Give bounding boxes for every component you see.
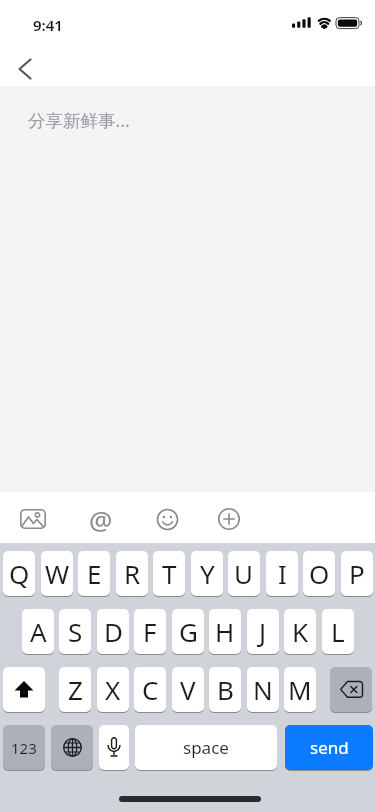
button[interactable]: O (303, 551, 335, 596)
button[interactable]: V (172, 667, 204, 712)
button[interactable] (150, 501, 184, 537)
button[interactable]: M (284, 667, 316, 712)
button[interactable]: W (41, 551, 73, 596)
button[interactable] (212, 501, 246, 537)
staticText: U (234, 556, 254, 591)
button[interactable]: P (341, 551, 373, 596)
staticText: B (217, 672, 234, 707)
staticText: J (259, 614, 267, 649)
staticText: A (30, 614, 47, 649)
staticText: D (104, 614, 123, 649)
staticText: N (253, 672, 273, 707)
button[interactable] (3, 667, 45, 712)
button[interactable]: @ (84, 501, 118, 537)
button[interactable] (14, 501, 52, 537)
button[interactable]: Z (59, 667, 91, 712)
staticText: K (292, 614, 309, 649)
staticText: S (68, 614, 83, 649)
button[interactable] (99, 725, 129, 770)
button[interactable]: E (78, 551, 110, 596)
staticText: V (180, 672, 196, 707)
button[interactable]: T (153, 551, 185, 596)
button[interactable]: R (116, 551, 148, 596)
staticText: P (349, 556, 365, 591)
staticText: I (278, 556, 287, 591)
button[interactable]: U (228, 551, 260, 596)
staticText: L (331, 614, 345, 649)
staticText: G (179, 614, 198, 649)
button[interactable]: L (322, 609, 354, 654)
button[interactable]: N (247, 667, 279, 712)
button[interactable]: 123 (3, 725, 45, 770)
staticText: T (162, 556, 177, 591)
button[interactable]: J (247, 609, 279, 654)
staticText: W (45, 556, 70, 591)
staticText: H (215, 614, 235, 649)
staticText: Q (9, 556, 30, 591)
staticText: R (124, 556, 141, 591)
button[interactable]: space (135, 725, 277, 770)
button[interactable]: I (266, 551, 298, 596)
staticText: Z (68, 672, 83, 707)
button[interactable]: G (172, 609, 204, 654)
button[interactable]: A (22, 609, 54, 654)
staticText: send (310, 736, 349, 759)
button[interactable]: X (97, 667, 129, 712)
staticText: O (309, 556, 330, 591)
button[interactable]: C (134, 667, 166, 712)
staticText: M (288, 672, 312, 707)
staticText: Y (200, 556, 215, 591)
button[interactable] (330, 667, 372, 712)
button[interactable]: B (209, 667, 241, 712)
button[interactable]: F (134, 609, 166, 654)
staticText: @ (89, 502, 113, 537)
button[interactable] (3, 52, 47, 86)
staticText: 分享新鲜事... (28, 108, 130, 132)
button[interactable]: D (97, 609, 129, 654)
staticText: C (142, 672, 159, 707)
button[interactable]: H (209, 609, 241, 654)
button[interactable]: Y (191, 551, 223, 596)
staticText: F (143, 614, 157, 649)
staticText: 9:41 (33, 15, 63, 35)
button[interactable] (51, 725, 93, 770)
staticText: E (87, 556, 102, 591)
staticText: 123 (11, 738, 37, 758)
staticText: space (183, 736, 229, 759)
staticText: X (105, 672, 121, 707)
button[interactable]: S (59, 609, 91, 654)
button[interactable]: K (284, 609, 316, 654)
button[interactable]: Q (3, 551, 35, 596)
button[interactable]: send (285, 725, 373, 770)
